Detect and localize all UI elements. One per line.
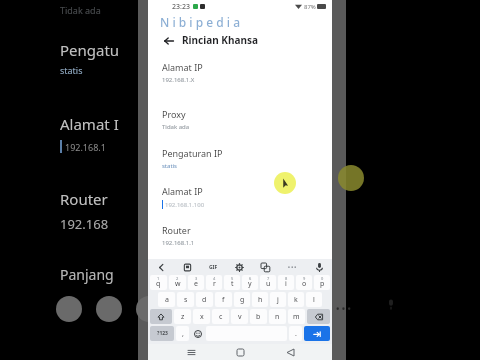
button[interactable]: f [215,292,232,307]
button[interactable]: n [269,309,286,324]
button[interactable]: 0 [314,275,330,290]
staticText: N i b i p e d i a [160,14,241,30]
staticText: 0 [321,276,324,281]
staticText: b [256,312,261,322]
button[interactable]: 5 [224,275,240,290]
staticText: d [202,295,207,305]
staticText: o [302,279,307,289]
staticText: 9 [303,276,306,281]
button[interactable]: Emoji [191,326,204,341]
button[interactable]: 7 [260,275,276,290]
staticText: h [258,295,263,305]
staticText: c [219,312,223,322]
staticText: Rincian Khansa [182,33,258,47]
staticText: 7 [267,276,270,281]
staticText: z [181,312,185,322]
button[interactable]: Back [148,30,332,50]
staticText: 23:23 [172,2,190,12]
staticText: Panjang awalan [162,262,229,274]
button[interactable]: Shift [150,309,172,324]
staticText: w [175,279,181,289]
staticText: e [194,279,198,289]
staticText: y [248,279,252,289]
button[interactable]: More options [284,259,300,275]
staticText: 192.168.1.1 [162,239,195,247]
staticText: s [184,295,188,305]
button[interactable]: a [158,292,175,307]
button[interactable]: 2 [169,275,186,290]
button[interactable]: Back [283,345,297,359]
button[interactable]: Next [304,326,330,341]
button[interactable]: Voice input [312,260,326,274]
staticText: , [182,329,184,339]
staticText: 1 [157,276,160,281]
button[interactable]: Proxy [162,107,332,132]
staticText: i [285,279,287,289]
button[interactable]: Pengaturan IP [162,146,332,171]
staticText: statis [162,162,177,170]
staticText: 3 [195,276,198,281]
staticText: 192.168.1.100 [165,201,205,209]
button[interactable]: Alamat IP [162,60,332,85]
button[interactable]: Home [233,345,247,359]
staticText: statis [60,64,83,76]
button[interactable]: 9 [296,275,312,290]
staticText: 192.168 [60,215,109,233]
staticText: Panjang [60,265,114,284]
button[interactable]: d [196,292,213,307]
staticText: Pengatu [60,40,120,60]
staticText: Router [162,224,191,236]
staticText: a [165,295,169,305]
button[interactable]: . [289,326,302,341]
button[interactable]: Alamat IP [162,185,332,209]
button[interactable]: Router [162,223,332,248]
button[interactable]: 4 [206,275,222,290]
staticText: 4 [213,276,216,281]
button[interactable]: 8 [278,275,294,290]
button[interactable]: Back [154,260,168,274]
staticText: f [222,295,225,305]
button[interactable]: b [250,309,267,324]
staticText: 2 [176,276,179,281]
button[interactable]: , [176,326,189,341]
button[interactable]: 1 [150,275,167,290]
button[interactable]: k [288,292,304,307]
staticText: ?123 [157,330,168,337]
button[interactable]: x [193,309,210,324]
button[interactable]: c [212,309,229,324]
staticText: Proxy [162,108,186,120]
button[interactable]: ?123 [150,326,174,341]
button[interactable]: l [306,292,322,307]
button[interactable]: Translate [258,260,272,274]
button[interactable]: 3 [188,275,204,290]
staticText: 192.168.1 [65,141,106,153]
staticText: q [156,279,161,289]
staticText: Pengaturan IP [162,147,223,159]
button[interactable]: Backspace [307,309,330,324]
staticText: . [295,329,297,339]
staticText: Alamat I [60,114,119,134]
button[interactable]: GIF [206,260,220,274]
button[interactable]: Settings [232,260,246,274]
staticText: u [266,279,271,289]
staticText: 5 [231,276,234,281]
staticText: 192.168.1.X [162,76,195,84]
button[interactable]: Back [162,34,175,47]
button[interactable]: g [234,292,250,307]
button[interactable]: h [252,292,268,307]
button[interactable]: m [288,309,305,324]
button[interactable]: Recents [184,345,198,359]
staticText: v [238,312,242,322]
button[interactable]: s [177,292,194,307]
button[interactable]: j [270,292,286,307]
staticText: g [240,295,245,305]
button[interactable]: v [231,309,248,324]
staticText: Tidak ada [162,123,190,131]
button[interactable]: z [174,309,191,324]
staticText: • • • [336,302,351,314]
button[interactable]: 6 [242,275,258,290]
staticText: 8 [285,276,288,281]
button[interactable]: Clipboard [180,260,194,274]
staticText: • • • [288,264,297,271]
